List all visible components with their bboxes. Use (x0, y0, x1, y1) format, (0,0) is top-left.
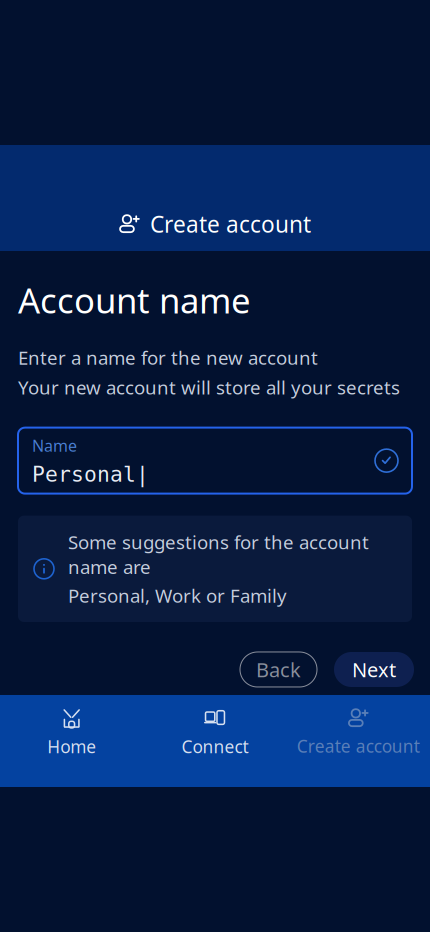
staticText: Create account (297, 734, 420, 757)
staticText: Some suggestions for the account name ar… (68, 530, 369, 579)
staticText: Next (352, 656, 396, 683)
button[interactable]: Next (334, 652, 414, 687)
staticText: Create account (150, 209, 311, 239)
staticText: Home (47, 735, 96, 758)
staticText: Personal, Work or Family (68, 583, 287, 608)
button[interactable]: Home (0, 695, 143, 768)
button[interactable]: Connect (143, 695, 287, 768)
staticText: Your new account will store all your sec… (18, 375, 400, 400)
button[interactable]: Back (240, 652, 317, 687)
staticText: Connect (181, 735, 248, 758)
staticText: Name (32, 435, 77, 456)
staticText: Enter a name for the new account (18, 345, 318, 370)
button[interactable]: Create account (287, 695, 430, 767)
staticText: Account name (18, 277, 251, 323)
staticText: Personal| (32, 462, 149, 486)
staticText: Back (256, 656, 301, 683)
